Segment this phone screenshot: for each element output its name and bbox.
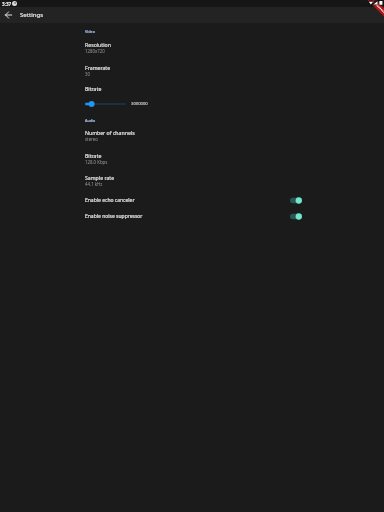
button[interactable]: Sample rate bbox=[85, 170, 300, 188]
staticText: 44.1 kHz bbox=[85, 181, 103, 187]
staticText: Framerate bbox=[85, 64, 111, 71]
button[interactable]: Bitrate bbox=[85, 82, 300, 94]
button[interactable]: Bitrate bbox=[85, 148, 300, 166]
staticText: 30 bbox=[85, 71, 90, 77]
staticText: 3000000 bbox=[131, 101, 148, 107]
staticText: Settings bbox=[20, 10, 44, 18]
staticText: Enable noise suppressor bbox=[85, 213, 290, 220]
button[interactable]: Enable noise suppressor bbox=[85, 209, 302, 224]
button[interactable]: Bitrate slider bbox=[85, 98, 126, 110]
staticText: Resolution bbox=[85, 41, 111, 48]
button[interactable]: Back bbox=[3, 10, 14, 21]
staticText: Number of channels bbox=[85, 129, 135, 136]
button[interactable]: Enable echo canceler bbox=[85, 193, 302, 208]
button[interactable]: Number of channels bbox=[85, 125, 300, 143]
staticText: 128.0 Kbps bbox=[85, 159, 108, 165]
staticText: Bitrate bbox=[85, 85, 102, 92]
staticText: Bitrate bbox=[85, 152, 102, 159]
staticText: stereo bbox=[85, 136, 98, 142]
button[interactable]: Framerate bbox=[85, 60, 300, 78]
staticText: 3:37 bbox=[2, 1, 12, 7]
staticText: Audio bbox=[85, 118, 96, 123]
staticText: Enable echo canceler bbox=[85, 197, 290, 204]
staticText: Sample rate bbox=[85, 174, 115, 181]
button[interactable]: Resolution bbox=[85, 37, 300, 55]
staticText: Video bbox=[85, 29, 95, 34]
staticText: 1280x720 bbox=[85, 48, 105, 54]
